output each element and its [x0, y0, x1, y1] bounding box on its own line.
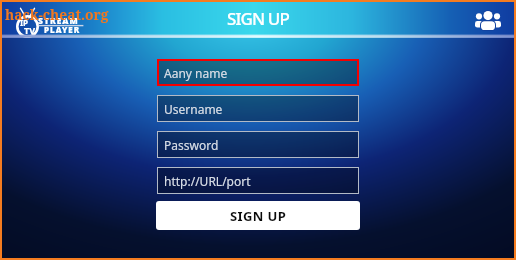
staticText: Password: [164, 137, 219, 153]
button[interactable]: Users: [475, 7, 501, 33]
staticText: STREAM: [38, 15, 79, 27]
staticText: IP: [20, 17, 29, 28]
staticText: hack-cheat.org: [5, 5, 109, 24]
staticText: SIGN UP: [227, 7, 289, 30]
staticText: http://URL/port: [164, 173, 251, 189]
button[interactable]: Password: [157, 131, 359, 158]
button[interactable]: Aany name: [157, 59, 359, 86]
staticText: PLAYER: [44, 24, 81, 35]
staticText: SIGN UP: [230, 207, 287, 225]
staticText: Username: [164, 101, 223, 117]
button[interactable]: http://URL/port: [157, 167, 359, 194]
staticText: TV: [24, 24, 36, 36]
staticText: Aany name: [164, 65, 228, 81]
button[interactable]: SIGN UP: [156, 201, 360, 230]
button[interactable]: Username: [157, 95, 359, 122]
